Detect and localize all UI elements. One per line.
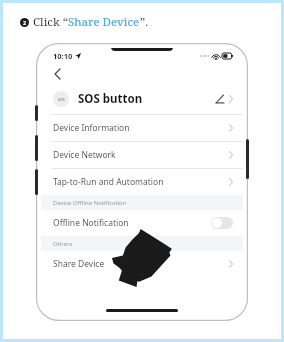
staticText: Offline Notification <box>53 217 129 229</box>
staticText: Others <box>53 240 73 248</box>
staticText: Device Offline Notification <box>53 199 127 207</box>
staticText: Share Device <box>68 14 140 30</box>
staticText: Device Information <box>53 122 130 134</box>
staticText: Share Device <box>53 258 105 270</box>
button[interactable]: Tap-to-Run and Automation <box>41 169 243 195</box>
staticText: ”. <box>140 14 149 30</box>
staticText: Tap-to-Run and Automation <box>53 176 164 188</box>
button[interactable]: Back <box>49 66 65 82</box>
button[interactable]: Device Network <box>41 142 243 168</box>
staticText: 2 <box>23 19 27 26</box>
button[interactable]: Device Information <box>41 115 243 141</box>
staticText: Click “ <box>33 14 68 30</box>
button[interactable]: Share Device <box>41 251 243 277</box>
button[interactable]: Offline Notification <box>41 210 243 236</box>
button[interactable]: SOS <box>41 84 243 114</box>
staticText: Device Network <box>53 149 116 161</box>
staticText: 10:10 <box>53 51 73 61</box>
button[interactable]: Edit <box>212 92 226 106</box>
staticText: SOS <box>58 97 65 102</box>
button[interactable]: Offline Notification toggle <box>211 217 233 229</box>
staticText: SOS button <box>78 91 143 107</box>
